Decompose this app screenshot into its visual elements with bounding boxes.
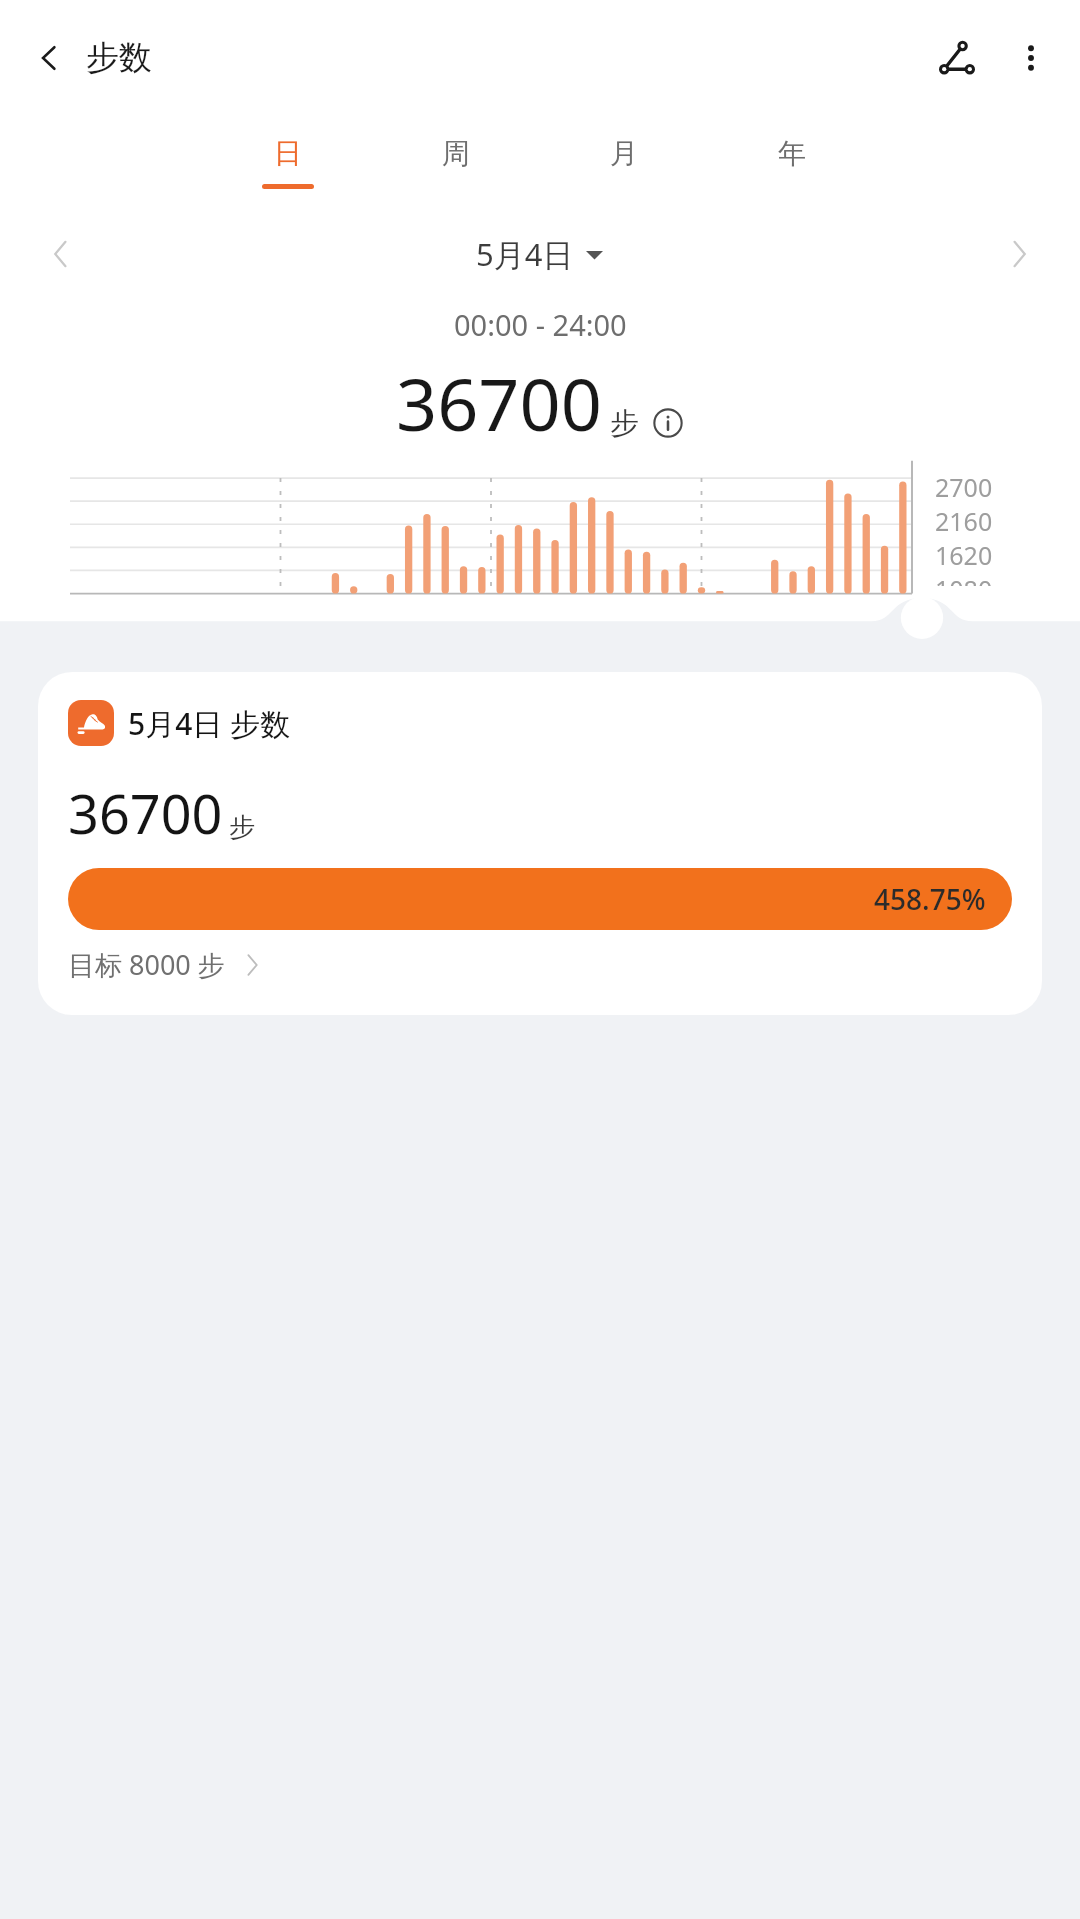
staticText: 00:00 - 24:00 [454, 305, 627, 344]
staticText: 1080 [935, 572, 993, 586]
staticText: 日 [274, 136, 302, 171]
staticText: 5月4日 步数 [128, 703, 291, 744]
staticText: 5月4日 [476, 233, 574, 275]
staticText: 2700 [935, 470, 993, 504]
button[interactable]: Back [20, 29, 78, 87]
staticText: 周 [442, 136, 470, 171]
staticText: 36700 [68, 776, 223, 850]
button[interactable]: 5月4日 [476, 233, 603, 275]
button[interactable]: 日 [262, 136, 314, 189]
button[interactable]: Next day [990, 225, 1048, 283]
button[interactable]: More options [1004, 31, 1058, 85]
staticText: 年 [778, 136, 806, 171]
button[interactable]: 周 [430, 136, 482, 189]
button[interactable]: Previous day [32, 225, 90, 283]
staticText: 步数 [86, 37, 152, 79]
staticText: 458.75% [874, 880, 986, 918]
button[interactable]: 5月4日 步数 [38, 672, 1042, 1015]
button[interactable]: Information [651, 406, 685, 440]
button[interactable]: 目标 8000 步 [68, 946, 265, 983]
button[interactable]: Share [924, 25, 990, 91]
staticText: 目标 8000 步 [68, 946, 225, 983]
button[interactable]: 月 [598, 136, 650, 189]
staticText: 步 [610, 405, 639, 442]
staticText: 36700 [396, 354, 602, 452]
staticText: 1620 [935, 538, 993, 572]
staticText: 2160 [935, 504, 993, 538]
staticText: 步 [229, 811, 255, 844]
button[interactable]: 年 [766, 136, 818, 189]
staticText: 月 [610, 136, 638, 171]
